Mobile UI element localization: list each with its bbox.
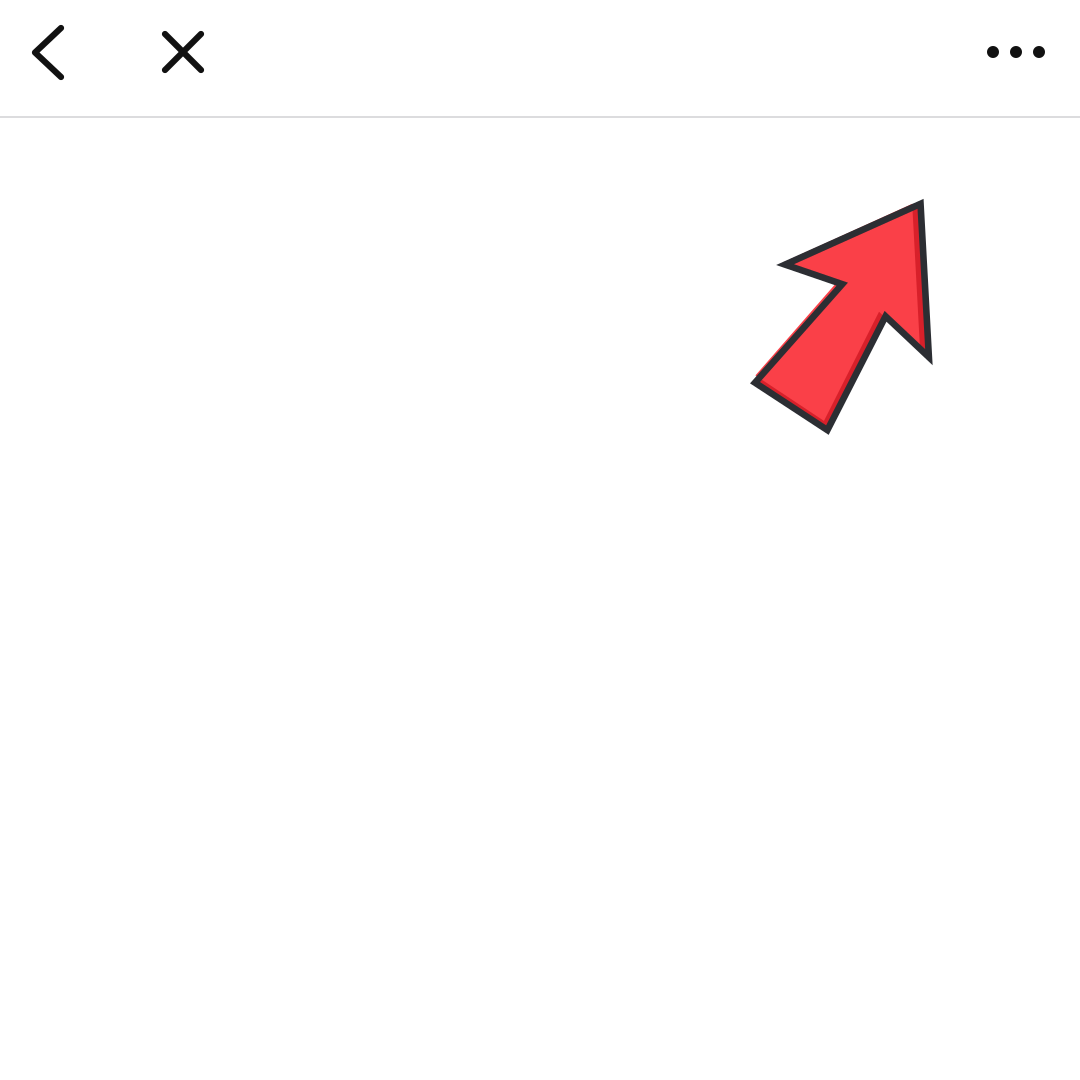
button[interactable]: Close: [0, 0, 231, 104]
button[interactable]: Back: [0, 0, 91, 105]
button[interactable]: More options: [957, 0, 1075, 104]
